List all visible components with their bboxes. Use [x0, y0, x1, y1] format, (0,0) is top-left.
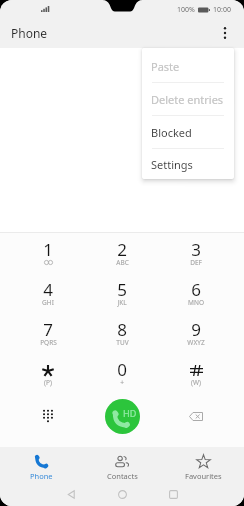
staticText: 7 [43, 318, 53, 339]
button[interactable]: 3 [159, 233, 233, 273]
staticText: 8 [117, 318, 127, 339]
staticText: DEF [190, 258, 202, 267]
staticText: PQRS [40, 338, 57, 347]
staticText: HD [123, 407, 137, 419]
staticText: Blocked [151, 125, 192, 140]
staticText: (W) [191, 378, 201, 387]
staticText: 1 [43, 238, 53, 259]
button[interactable]: 0 [85, 353, 159, 393]
staticText: 6 [191, 278, 201, 299]
staticText: Phone [30, 471, 53, 481]
button[interactable]: 1 [11, 233, 85, 273]
staticText: Settings [151, 157, 193, 172]
button[interactable]: 9 [159, 313, 233, 353]
button[interactable]: Back [46, 482, 97, 506]
button[interactable]: 2 [85, 233, 159, 273]
button[interactable]: Contacts [82, 447, 163, 482]
staticText: 2 [117, 238, 127, 259]
button[interactable]: Hide keypad [11, 389, 85, 443]
button[interactable]: 8 [85, 313, 159, 353]
staticText: 9 [191, 318, 201, 339]
button[interactable]: 4 [11, 273, 85, 313]
button[interactable]: More options [211, 20, 239, 48]
staticText: + [120, 378, 124, 387]
staticText: GHI [42, 298, 54, 307]
button[interactable]: (P) [11, 353, 85, 393]
staticText: WXYZ [187, 338, 205, 347]
staticText: Phone [11, 25, 48, 41]
staticText: 5 [117, 278, 127, 299]
staticText: 0 [117, 358, 127, 379]
button[interactable]: (W) [159, 353, 233, 393]
staticText: 10:00 [213, 5, 231, 15]
button[interactable]: Recents [148, 482, 199, 506]
button[interactable]: Delete entries [142, 83, 234, 115]
button[interactable]: 5 [85, 273, 159, 313]
staticText: TUV [116, 338, 129, 347]
button[interactable]: 6 [159, 273, 233, 313]
staticText: JKL [117, 298, 127, 307]
staticText: (P) [44, 378, 52, 387]
button[interactable]: Backspace [159, 389, 233, 443]
button[interactable]: Home [97, 482, 148, 506]
button[interactable]: Paste [142, 50, 234, 82]
staticText: Contacts [107, 471, 138, 481]
button[interactable]: Phone [0, 447, 82, 482]
button[interactable]: Favourites [163, 447, 244, 482]
staticText: Paste [151, 59, 180, 74]
staticText: 4 [43, 278, 53, 299]
staticText: ABC [116, 258, 129, 267]
staticText: Favourites [185, 471, 222, 481]
staticText: 3 [191, 238, 201, 259]
button[interactable]: 7 [11, 313, 85, 353]
staticText: 100% [177, 5, 195, 15]
staticText: Delete entries [151, 92, 224, 107]
button[interactable]: Blocked [142, 116, 234, 148]
button[interactable]: Call [105, 399, 140, 434]
staticText: MNO [188, 298, 204, 307]
button[interactable]: Settings [142, 149, 234, 179]
